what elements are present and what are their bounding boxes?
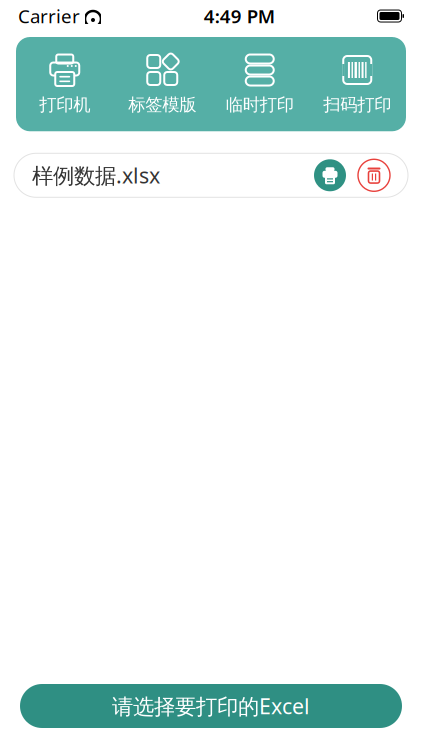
staticText: 打印机 xyxy=(39,94,90,115)
button[interactable]: 打印 xyxy=(314,159,346,191)
staticText: 临时打印 xyxy=(226,94,294,115)
staticText: 请选择要打印的Excel xyxy=(112,692,310,720)
staticText: 4:49 PM xyxy=(204,4,275,28)
staticText: 标签模版 xyxy=(128,94,196,115)
staticText: 样例数据.xlsx xyxy=(32,161,160,189)
button[interactable]: 请选择要打印的Excel xyxy=(20,684,402,728)
staticText: Carrier xyxy=(18,4,80,28)
button[interactable]: 删除 xyxy=(358,159,390,191)
button[interactable]: 标签模版 xyxy=(113,51,211,117)
button[interactable]: 临时打印 xyxy=(211,51,308,117)
button[interactable]: 打印机 xyxy=(16,51,113,117)
staticText: 扫码打印 xyxy=(323,94,391,115)
button[interactable]: 扫码打印 xyxy=(308,51,406,117)
